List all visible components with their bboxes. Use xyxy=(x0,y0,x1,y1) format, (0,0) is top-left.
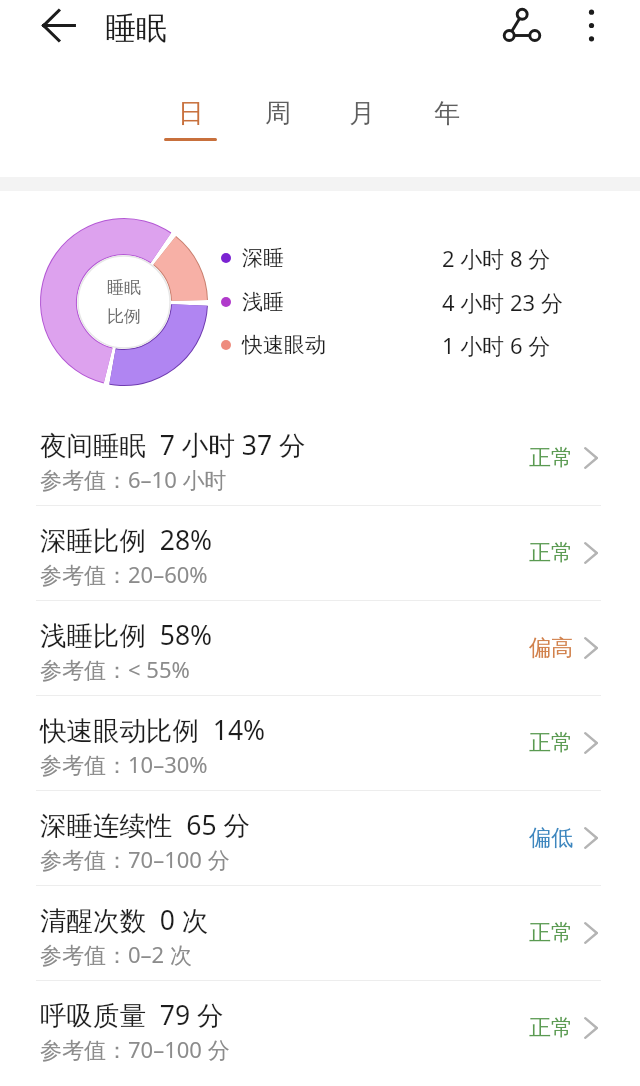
button[interactable]: Share xyxy=(492,5,552,45)
staticText: 睡眠 xyxy=(107,277,141,298)
staticText: 参考值：70–100 分 xyxy=(40,844,230,874)
button[interactable]: 月 xyxy=(319,86,404,146)
staticText: 清醒次数 0 次 xyxy=(40,902,209,938)
staticText: 夜间睡眠 7 小时 37 分 xyxy=(40,427,306,463)
button[interactable]: 呼吸质量 79 分 xyxy=(0,980,640,1075)
staticText: 快速眼动比例 14% xyxy=(40,712,266,748)
staticText: 参考值：10–30% xyxy=(40,749,208,779)
staticText: 浅睡 xyxy=(242,289,284,315)
button[interactable]: 夜间睡眠 7 小时 37 分 xyxy=(0,410,640,505)
staticText: 正常 xyxy=(529,444,573,472)
staticText: 1 小时 6 分 xyxy=(442,330,551,360)
staticText: 睡眠 xyxy=(105,9,167,48)
staticText: 快速眼动 xyxy=(242,332,326,358)
button[interactable]: 快速眼动比例 14% xyxy=(0,695,640,790)
staticText: 偏低 xyxy=(529,824,573,852)
staticText: 深睡连续性 65 分 xyxy=(40,807,250,843)
button[interactable]: 深睡连续性 65 分 xyxy=(0,790,640,885)
staticText: 呼吸质量 79 分 xyxy=(40,997,224,1033)
staticText: 月 xyxy=(349,97,375,130)
staticText: 浅睡比例 58% xyxy=(40,617,213,653)
staticText: 参考值：< 55% xyxy=(40,654,190,684)
staticText: 偏高 xyxy=(529,634,573,662)
staticText: 参考值：6–10 小时 xyxy=(40,464,227,494)
button[interactable]: 深睡比例 28% xyxy=(0,505,640,600)
staticText: 正常 xyxy=(529,1014,573,1042)
staticText: 参考值：0–2 次 xyxy=(40,939,192,969)
staticText: 4 小时 23 分 xyxy=(442,287,563,317)
button[interactable]: 浅睡比例 58% xyxy=(0,600,640,695)
staticText: 深睡 xyxy=(242,245,284,271)
staticText: 正常 xyxy=(529,919,573,947)
button[interactable]: 日 xyxy=(148,86,233,146)
staticText: 日 xyxy=(178,97,204,130)
button[interactable]: 清醒次数 0 次 xyxy=(0,885,640,980)
staticText: 比例 xyxy=(107,306,141,327)
button[interactable]: 周 xyxy=(235,86,320,146)
staticText: 参考值：20–60% xyxy=(40,559,208,589)
staticText: 正常 xyxy=(529,729,573,757)
button[interactable]: More options xyxy=(566,3,616,48)
staticText: 深睡比例 28% xyxy=(40,522,213,558)
staticText: 参考值：70–100 分 xyxy=(40,1034,230,1064)
button[interactable]: Back xyxy=(24,7,93,44)
button[interactable]: 年 xyxy=(404,86,489,146)
staticText: 年 xyxy=(434,97,460,130)
staticText: 周 xyxy=(265,97,291,130)
staticText: 正常 xyxy=(529,539,573,567)
staticText: 2 小时 8 分 xyxy=(442,243,551,273)
